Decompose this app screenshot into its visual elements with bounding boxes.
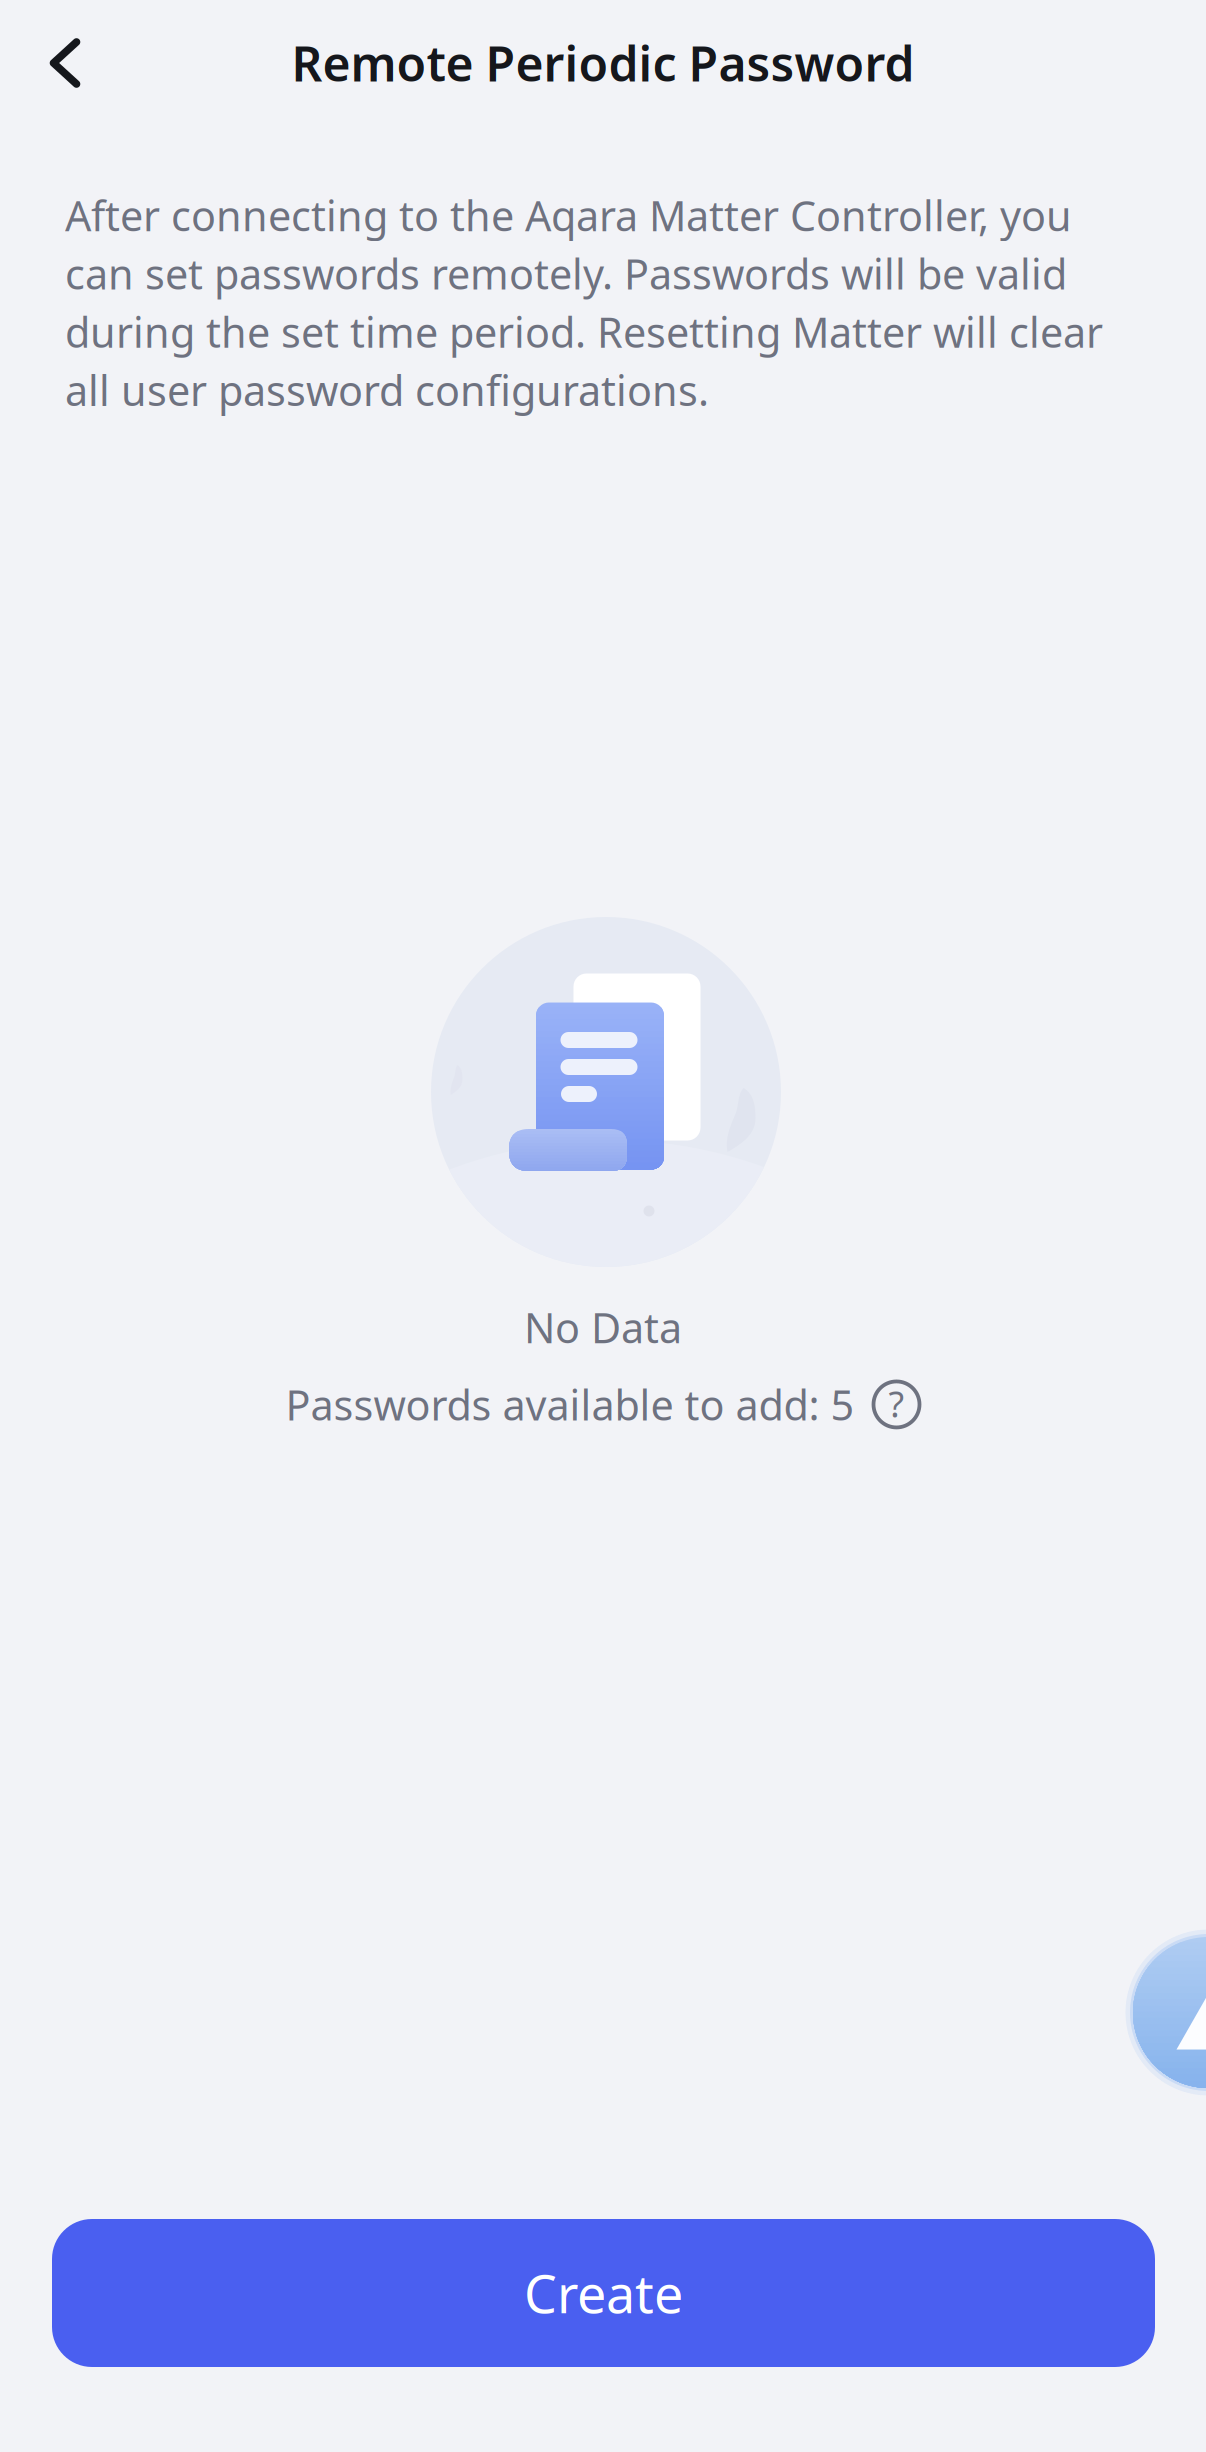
staticText: No Data [524, 1299, 682, 1355]
staticText: Create [524, 2258, 683, 2328]
staticText: After connecting to the Aqara Matter Con… [65, 187, 1103, 418]
button[interactable]: Help [872, 1380, 920, 1428]
staticText: ? [888, 1379, 904, 1428]
button[interactable]: Back [10, 8, 120, 118]
staticText: Passwords available to add: 5 [285, 1376, 854, 1433]
button[interactable]: Create [52, 2219, 1155, 2367]
staticText: Remote Periodic Password [291, 30, 914, 96]
